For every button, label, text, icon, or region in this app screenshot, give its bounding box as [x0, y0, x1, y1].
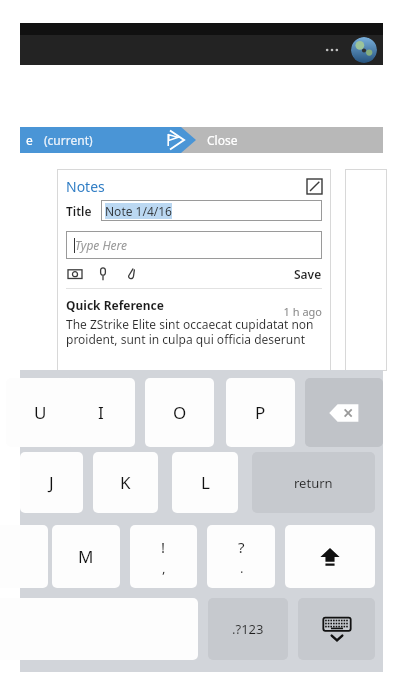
staticText: , — [162, 559, 166, 577]
button[interactable]: return — [252, 452, 375, 513]
button[interactable]: K — [93, 452, 158, 513]
button[interactable]: Notes — [66, 177, 105, 196]
staticText: ! — [161, 537, 166, 557]
staticText: 1 h ago — [66, 304, 322, 319]
button[interactable]: Edit note — [307, 179, 322, 194]
button[interactable]: I — [66, 378, 135, 447]
button[interactable]: U — [6, 378, 75, 447]
staticText: K — [120, 471, 131, 494]
staticText: e — [26, 132, 33, 148]
staticText: J — [49, 471, 54, 494]
staticText: ? — [238, 537, 245, 557]
button[interactable]: Hide keyboard — [298, 598, 375, 660]
button[interactable]: P — [226, 378, 295, 447]
button[interactable]: Type Here — [66, 231, 322, 259]
staticText: Notes — [66, 177, 105, 196]
staticText: Save — [294, 266, 322, 282]
button[interactable]: O — [145, 378, 214, 447]
staticText: O — [173, 401, 187, 424]
staticText: P — [255, 401, 266, 424]
button[interactable]: L — [172, 452, 238, 513]
button[interactable]: Note 1/4/16 — [101, 200, 322, 221]
button[interactable]: Save — [294, 266, 322, 282]
staticText: . — [240, 559, 244, 577]
button[interactable]: More options — [318, 36, 346, 64]
button[interactable]: M — [52, 525, 120, 588]
staticText: Title — [66, 203, 92, 219]
staticText: M — [78, 545, 94, 568]
button[interactable]: Account — [351, 37, 377, 63]
button[interactable]: Backspace — [305, 378, 383, 447]
staticText: return — [294, 474, 333, 492]
staticText: Type Here — [75, 237, 128, 253]
staticText: The ZStrike Elite sint occaecat cupidata… — [66, 316, 322, 347]
staticText: Note 1/4/16 — [105, 203, 172, 219]
staticText: (current) — [44, 132, 93, 148]
button[interactable]: Close — [196, 127, 383, 153]
button[interactable] — [20, 127, 196, 153]
button[interactable]: J — [20, 452, 83, 513]
button[interactable]: Shift — [285, 525, 375, 588]
button[interactable]: Add photo — [66, 265, 83, 282]
staticText: L — [201, 471, 210, 494]
button[interactable]: Record audio — [94, 265, 111, 282]
button[interactable]: ! — [130, 525, 197, 588]
staticText: I — [98, 401, 104, 424]
staticText: Quick Reference — [66, 297, 164, 313]
button[interactable]: Attach file — [122, 265, 139, 282]
staticText: U — [34, 401, 47, 424]
staticText: .?123 — [232, 620, 264, 638]
staticText: Close — [207, 132, 238, 148]
button[interactable]: ? — [207, 525, 275, 588]
button[interactable]: .?123 — [208, 598, 288, 660]
